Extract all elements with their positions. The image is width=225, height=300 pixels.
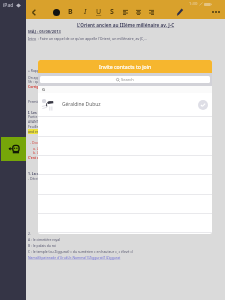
staticText: - Décrire la ville [28,176,53,181]
staticText: S [110,7,114,17]
staticText: A : le cimetière royal [28,237,61,242]
staticText: Feuille de route n°1 [28,124,60,129]
button[interactable]: Text colour [50,4,63,20]
staticText: On appelle l'Orient ancien la région du … [28,75,129,80]
staticText: L'Orient ancien au IIIème millénaire av.… [26,22,225,28]
staticText: Premières civilisations en Mésopotamie e… [28,99,112,104]
staticText: and ensuite répondre aux questions [28,129,86,134]
staticText: Intro [28,36,37,41]
button[interactable]: Invite contacts to join [38,60,212,73]
staticText: Partie 1 : l'apparition des premières vi… [28,114,94,119]
staticText: B : le palais du roi [28,243,57,248]
button[interactable]: Géraldine Dubuz [38,93,212,116]
button[interactable]: Align text [132,4,145,20]
button[interactable]: Back [28,4,40,20]
staticText: I. Les premières cités de Mésopotamie [28,110,93,115]
staticText: : Faire un rappel de ce qu'on appelle l'… [38,36,148,41]
button[interactable]: B [64,4,77,20]
staticText: - Doc 1 p.18 : la cité d'Our [30,140,71,145]
button[interactable]: Search [40,76,210,83]
staticText: b. Les temples [33,150,56,155]
staticText: Search [121,77,134,82]
button[interactable] [38,214,212,233]
staticText: U [96,7,102,17]
staticText: MÀJ : 05/08/2013 [28,29,61,34]
button[interactable]: Align text [119,4,132,20]
button[interactable]: Add contact [1,137,26,161]
staticText: 1:30 [189,1,198,7]
button[interactable] [38,194,212,213]
staticText: iPad [3,2,14,9]
staticText: + Rappel de la chronologie : Antiquité, … [28,68,137,73]
button[interactable]: U [92,4,105,20]
button[interactable]: More options [209,4,223,20]
button[interactable]: S [105,4,118,20]
staticText: 2. [28,231,31,236]
staticText: B [68,7,73,17]
staticText: Géraldine Dubuz [62,101,101,108]
staticText: C'est une ville organisée [28,155,69,160]
staticText: a. Les habitations [33,146,61,151]
button[interactable] [38,233,212,234]
button[interactable]: Align text [145,4,158,20]
staticText: I [84,7,87,17]
button[interactable] [38,156,212,175]
button[interactable]: I [79,4,92,20]
staticText: C : le temple (ou Ziggurat) = du sumérie… [28,249,133,254]
staticText: G [42,87,46,93]
staticText: 1. La cité d'Our (doc 1 p.18) [28,171,74,176]
staticText: NamaSltpatnrade d'UrukUr-Namma(1)Ziggura… [28,255,121,260]
button[interactable]: Edit [173,4,187,20]
staticText: Corrigé de la séance 1 [28,84,65,89]
staticText: AVANT de commencer, lire le document 1 p… [28,119,101,124]
staticText: Invite contacts to join [99,63,152,70]
button[interactable] [38,136,212,155]
staticText: Sh : quelles sont les premières civilisa… [28,79,116,84]
